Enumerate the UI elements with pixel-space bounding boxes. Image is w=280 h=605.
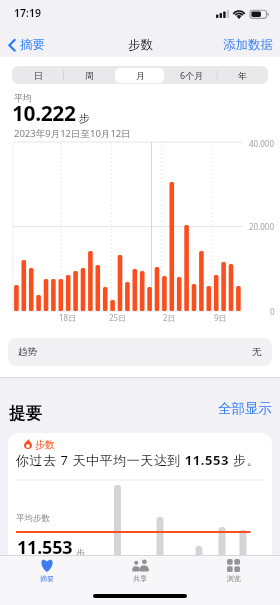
staticText: 步数: [35, 438, 55, 451]
button[interactable]: 趋势: [8, 338, 272, 366]
staticText: 摘要: [40, 574, 54, 583]
staticText: 日: [34, 70, 43, 81]
staticText: 无: [252, 346, 262, 358]
button[interactable]: 摘要: [4, 33, 64, 55]
staticText: 你过去 7 天中平均一天达到 11.553 步。: [16, 451, 260, 469]
button[interactable]: 周: [64, 66, 115, 84]
button[interactable]: 摘要: [0, 556, 93, 600]
staticText: 25日: [109, 312, 127, 323]
staticText: 周: [85, 70, 94, 81]
button[interactable]: 全部显示: [200, 400, 272, 416]
button[interactable]: 共享: [93, 556, 186, 600]
staticText: 全部显示: [218, 400, 272, 416]
staticText: 2日: [163, 312, 176, 323]
staticText: 2023年9月12日至10月12日: [14, 127, 131, 140]
staticText: 平均步数: [16, 513, 50, 524]
staticText: 共享: [133, 574, 147, 583]
staticText: 摘要: [20, 37, 45, 53]
button[interactable]: 浏览: [187, 556, 280, 600]
staticText: 20.000: [249, 221, 275, 232]
staticText: 平均: [14, 92, 32, 103]
button[interactable]: 年: [217, 66, 268, 84]
button[interactable]: 月: [115, 66, 166, 84]
button[interactable]: 日: [12, 66, 64, 84]
staticText: 17:19: [14, 6, 41, 20]
staticText: 浏览: [227, 574, 241, 583]
staticText: 6个月: [180, 69, 204, 81]
staticText: 0: [270, 306, 275, 317]
button[interactable]: 步数: [8, 433, 272, 605]
staticText: 10.222: [12, 99, 76, 128]
staticText: 提要: [9, 403, 42, 424]
staticText: 步: [79, 111, 90, 125]
staticText: 9日: [214, 312, 227, 323]
staticText: 月: [136, 70, 145, 81]
staticText: 步数: [128, 37, 153, 53]
staticText: 步: [76, 547, 85, 558]
staticText: 添加数据: [223, 37, 273, 53]
staticText: 40.000: [249, 138, 275, 149]
staticText: 年: [238, 70, 247, 81]
button[interactable]: 添加数据: [217, 33, 273, 55]
staticText: 趋势: [18, 346, 37, 358]
staticText: 18日: [59, 312, 77, 323]
button[interactable]: 6个月: [166, 66, 217, 84]
staticText: 11.553: [17, 535, 73, 560]
